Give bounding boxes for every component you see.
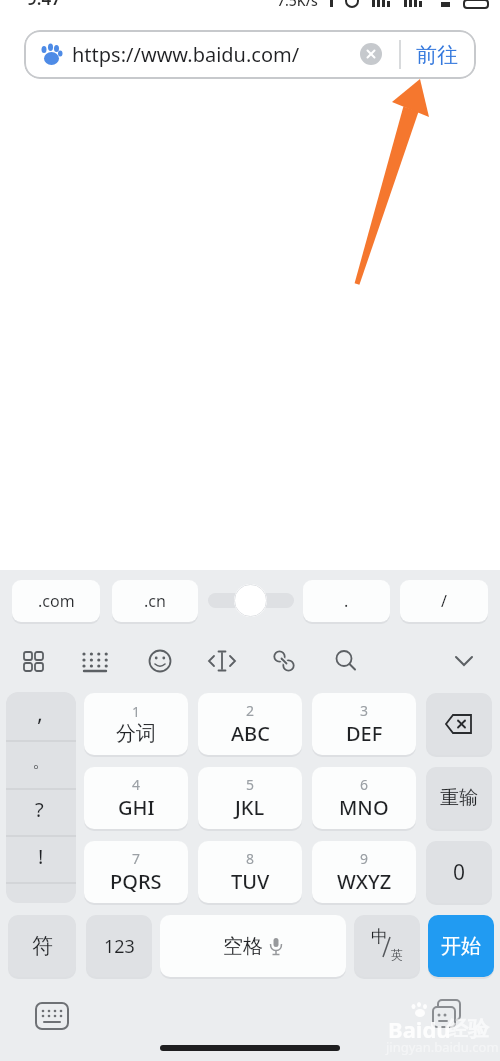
staticText: .com <box>38 590 75 612</box>
staticText: 8 <box>246 849 255 868</box>
button[interactable]: .cn <box>112 580 198 622</box>
staticText: GHI <box>118 794 155 821</box>
staticText: . <box>344 590 349 612</box>
button[interactable]: . <box>303 580 390 622</box>
button[interactable] <box>360 43 382 65</box>
staticText: 5 <box>246 775 255 794</box>
button[interactable]: .com <box>12 580 100 622</box>
staticText: Baidu <box>388 1014 451 1044</box>
button[interactable]: 符 <box>8 915 76 977</box>
staticText: / <box>441 590 447 612</box>
button[interactable]: 9 <box>312 841 416 903</box>
staticText: , <box>37 697 43 727</box>
staticText: 。 <box>32 750 50 773</box>
staticText: ABC <box>231 720 270 747</box>
button[interactable]: 空格 <box>160 915 346 977</box>
button[interactable]: 开始 <box>428 915 494 977</box>
staticText: 开始 <box>441 934 481 959</box>
button[interactable]: 1 <box>84 693 188 755</box>
staticText: 123 <box>104 934 135 959</box>
staticText: 前往 <box>416 42 458 68</box>
button[interactable] <box>426 693 492 755</box>
staticText: https://www.baidu.com/ <box>72 41 300 68</box>
button[interactable]: https://www.baidu.com/ <box>24 30 476 79</box>
staticText: 7 <box>132 849 141 868</box>
staticText: ! <box>38 843 44 870</box>
button[interactable]: 中 <box>354 915 420 977</box>
button[interactable]: 4 <box>84 767 188 829</box>
staticText: 空格 <box>223 934 263 959</box>
button[interactable]: / <box>400 580 488 622</box>
staticText: 3 <box>360 701 369 720</box>
button[interactable]: 2 <box>198 693 302 755</box>
button[interactable] <box>430 998 470 1036</box>
staticText: 中 <box>371 926 388 947</box>
button[interactable]: , <box>6 692 76 903</box>
staticText: PQRS <box>110 868 162 895</box>
staticText: 6 <box>360 775 369 794</box>
staticText: WXYZ <box>337 868 392 895</box>
staticText: 9:47 <box>27 0 61 10</box>
staticText: 1 <box>132 702 141 721</box>
button[interactable]: 前往 <box>404 30 470 79</box>
staticText: MNO <box>339 794 389 821</box>
staticText: 英 <box>391 947 403 962</box>
staticText: 0 <box>453 858 466 887</box>
button[interactable]: 3 <box>312 693 416 755</box>
staticText: TUV <box>231 868 270 895</box>
button[interactable]: 重输 <box>426 767 492 829</box>
button[interactable]: 8 <box>198 841 302 903</box>
button[interactable]: 123 <box>86 915 152 977</box>
button[interactable]: 0 <box>426 841 492 903</box>
button[interactable] <box>35 1002 69 1030</box>
staticText: 2 <box>246 701 255 720</box>
staticText: ? <box>35 796 44 823</box>
button[interactable]: 5 <box>198 767 302 829</box>
button[interactable]: 6 <box>312 767 416 829</box>
staticText: 经验 <box>447 1016 489 1042</box>
staticText: 9 <box>360 849 369 868</box>
button[interactable]: 7 <box>84 841 188 903</box>
staticText: 分词 <box>116 721 156 746</box>
staticText: 重输 <box>440 786 478 810</box>
staticText: JKL <box>235 794 265 821</box>
button[interactable] <box>234 584 267 617</box>
staticText: 符 <box>32 933 53 959</box>
staticText: 4 <box>132 775 141 794</box>
staticText: .cn <box>144 590 166 612</box>
staticText: 7.5K/s <box>277 0 318 10</box>
staticText: DEF <box>346 720 383 747</box>
